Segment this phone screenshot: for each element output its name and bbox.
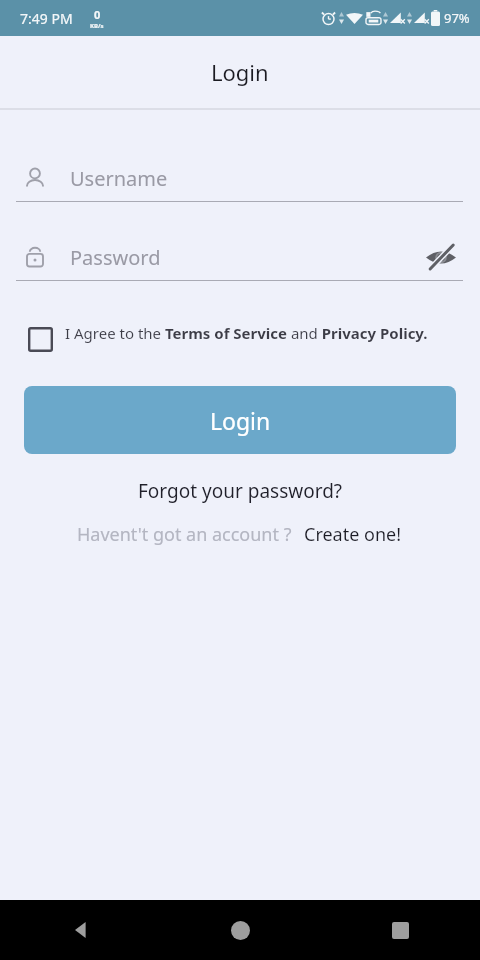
staticText: 0 [94, 7, 101, 22]
staticText: Forgot your password? [138, 478, 343, 504]
staticText: Password [70, 244, 161, 271]
button[interactable]: Username [16, 155, 464, 201]
button[interactable]: Login [24, 386, 456, 454]
button[interactable]: Show password [418, 234, 464, 280]
button[interactable]: Forgot your password? [126, 474, 355, 508]
button[interactable]: Back [0, 900, 160, 960]
staticText: I Agree to the Terms of Service and Priv… [65, 323, 428, 343]
staticText: Create one! [304, 522, 402, 547]
button[interactable]: Recent apps [320, 900, 480, 960]
button[interactable]: I Agree to the Terms of Service and Priv… [28, 323, 460, 352]
staticText: Havent't got an account ? [77, 522, 292, 547]
staticText: KB/s [90, 22, 104, 30]
staticText: 7:49 PM [20, 9, 73, 28]
button[interactable]: Password [16, 234, 464, 280]
button[interactable]: Home [160, 900, 320, 960]
button[interactable]: Create one! [302, 518, 404, 551]
staticText: 97% [444, 9, 470, 27]
staticText: Username [70, 165, 168, 192]
staticText: Login [210, 405, 271, 436]
staticText: Login [211, 57, 269, 87]
